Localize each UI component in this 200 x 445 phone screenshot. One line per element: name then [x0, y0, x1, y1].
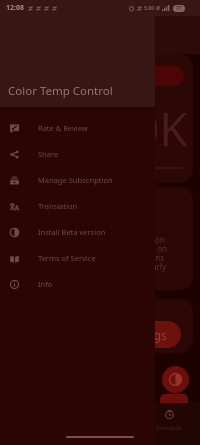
staticText: Info [38, 279, 53, 289]
staticText: Advanced filter settings [34, 327, 167, 343]
button[interactable]: Toggle screen filter [162, 366, 189, 393]
staticText: Install Beta version [38, 227, 106, 237]
button[interactable]: Advanced filter settings [20, 321, 181, 348]
staticText: Share [38, 149, 59, 159]
staticText: awake. Turn it off to show notifications [19, 252, 165, 263]
staticText: 77 [176, 5, 182, 12]
staticText: Keep the screen filter running while on [19, 234, 165, 245]
button[interactable]: Translation [0, 193, 155, 219]
button[interactable]: 3100K [7, 54, 193, 183]
button[interactable]: Info [0, 271, 155, 297]
button[interactable]: Rate & Review [0, 115, 155, 141]
button[interactable]: Manage Subscription [0, 167, 155, 193]
staticText: Rate & Review [38, 123, 88, 133]
staticText: Manage Subscription [38, 175, 113, 185]
button[interactable]: Share [0, 141, 155, 167]
staticText: Schedule [156, 424, 182, 432]
staticText: Terms of Service [38, 253, 96, 263]
button[interactable]: Terms of Service [0, 245, 155, 271]
staticText: and dim the display automatically early [19, 261, 166, 272]
staticText: top of other apps when the device is on [19, 243, 167, 254]
staticText: 5.00 [144, 5, 154, 12]
button[interactable]: Install Beta version [0, 219, 155, 245]
button[interactable]: Schedule [149, 410, 189, 432]
staticText: 12:08 [6, 3, 24, 13]
staticText: 3100K [54, 97, 188, 160]
button[interactable]: Keep the screen filter running while on [7, 187, 193, 290]
staticText: Color Temp Control [8, 83, 113, 99]
staticText: Translation [38, 201, 78, 211]
